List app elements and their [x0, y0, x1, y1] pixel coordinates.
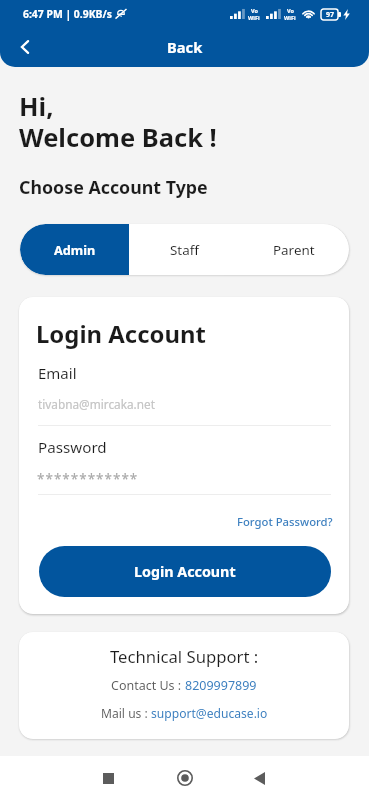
staticText: Hi, — [19, 89, 54, 124]
staticText: Email — [38, 363, 77, 383]
staticText: Welcome Back ! — [19, 120, 217, 155]
staticText: Login Account — [134, 562, 236, 581]
staticText: WiFi — [284, 14, 296, 21]
button[interactable]: Home — [163, 756, 207, 800]
staticText: Staff — [170, 241, 199, 259]
button[interactable]: Forgot Password? — [237, 514, 333, 529]
button[interactable]: Back — [237, 756, 281, 800]
staticText: 97 — [326, 10, 335, 20]
staticText: 6:47 PM | 0.9KB/s — [23, 7, 112, 21]
button[interactable]: Staff — [129, 224, 239, 275]
staticText: Contact Us : — [111, 677, 185, 694]
staticText: ************ — [37, 470, 139, 488]
staticText: Vo — [287, 7, 294, 14]
button[interactable]: Login Account — [39, 546, 331, 597]
button[interactable]: Back — [7, 29, 43, 65]
staticText: Parent — [273, 241, 315, 259]
staticText: Back — [167, 37, 203, 57]
staticText: Login Account — [36, 317, 206, 350]
button[interactable]: support@educase.io — [151, 705, 268, 721]
staticText: Admin — [54, 241, 96, 258]
staticText: Technical Support : — [110, 645, 259, 668]
staticText: Vo — [251, 7, 258, 14]
staticText: Mail us : — [101, 705, 151, 721]
button[interactable]: Parent — [239, 224, 349, 275]
button[interactable]: Admin — [20, 224, 129, 275]
staticText: Password — [38, 437, 107, 458]
staticText: tivabna@mircaka.net — [38, 396, 155, 412]
button[interactable]: Recents — [86, 756, 130, 800]
staticText: WiFi — [248, 14, 260, 21]
button[interactable]: 8209997899 — [185, 677, 257, 694]
staticText: Choose Account Type — [19, 175, 208, 199]
